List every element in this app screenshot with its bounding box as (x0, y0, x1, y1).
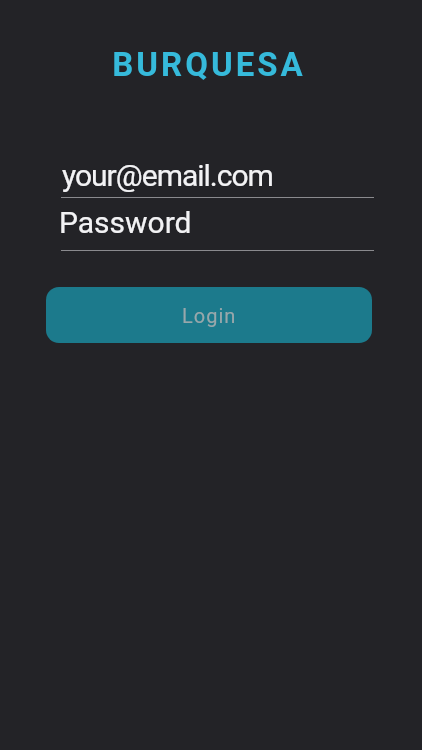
staticText: Login (182, 304, 237, 327)
staticText: BURQUESA (0, 45, 420, 84)
staticText: Password (59, 205, 192, 240)
button[interactable]: Password (46, 198, 376, 251)
button[interactable]: Login (46, 287, 372, 343)
button[interactable]: your@email.com (46, 145, 376, 198)
staticText: your@email.com (62, 158, 273, 193)
